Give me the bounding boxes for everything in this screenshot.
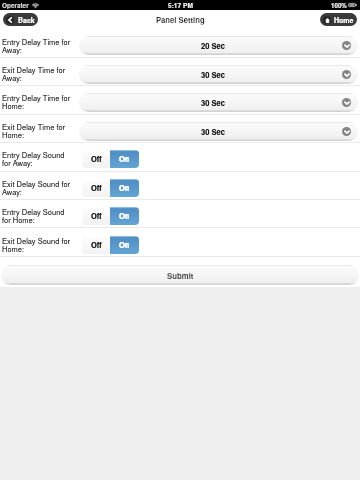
staticText: Entry Delay Time for Home: (2, 92, 75, 111)
staticText: Back (18, 15, 35, 25)
staticText: 30 Sec (201, 69, 226, 80)
staticText: On (119, 154, 130, 165)
staticText: Entry Delay Time for Away: (2, 36, 75, 55)
staticText: Off (91, 154, 102, 165)
staticText: 100% (331, 1, 347, 10)
button[interactable]: 30 Sec (79, 122, 358, 141)
staticText: Exit Delay Time for Away: (2, 64, 75, 83)
staticText: 20 Sec (201, 40, 226, 51)
button[interactable]: Back (3, 13, 38, 26)
staticText: Off (91, 211, 102, 222)
button[interactable]: 30 Sec (79, 93, 358, 112)
button[interactable]: On (110, 236, 139, 254)
staticText: Panel Setting (156, 14, 205, 25)
staticText: Entry Delay Sound for Home: (2, 206, 75, 225)
staticText: 30 Sec (201, 97, 226, 108)
staticText: Off (91, 183, 102, 194)
staticText: On (119, 183, 130, 194)
staticText: Exit Delay Sound for Home: (2, 235, 75, 254)
staticText: On (119, 211, 130, 222)
staticText: 30 Sec (201, 126, 226, 137)
staticText: On (119, 240, 130, 251)
staticText: 30 Sec (201, 97, 226, 108)
button[interactable]: Off (82, 179, 110, 197)
button[interactable]: On (110, 207, 139, 225)
staticText: Off (91, 154, 102, 165)
button[interactable]: 20 Sec (79, 36, 358, 55)
staticText: Exit Delay Sound for Away: (2, 178, 75, 197)
button[interactable]: Off (82, 207, 110, 225)
button[interactable]: Submit (1, 265, 359, 285)
staticText: Exit Delay Sound for Away: (2, 178, 75, 197)
staticText: On (119, 240, 130, 251)
staticText: Submit (167, 270, 194, 281)
button[interactable]: 30 Sec (79, 65, 358, 84)
staticText: Home (334, 15, 354, 25)
staticText: Exit Delay Time for Home: (2, 121, 75, 140)
staticText: On (119, 183, 130, 194)
button[interactable]: On (110, 150, 139, 168)
button[interactable]: Home (320, 13, 357, 26)
button[interactable]: On (110, 179, 139, 197)
staticText: 30 Sec (201, 126, 226, 137)
staticText: On (119, 154, 130, 165)
staticText: Entry Delay Sound for Away: (2, 149, 75, 168)
staticText: Exit Delay Sound for Home: (2, 235, 75, 254)
button[interactable]: Off (82, 236, 110, 254)
staticText: Entry Delay Sound for Away: (2, 149, 75, 168)
staticText: 30 Sec (201, 69, 226, 80)
staticText: Off (91, 240, 102, 251)
staticText: 5:17 PM (168, 1, 193, 10)
staticText: Off (91, 240, 102, 251)
staticText: Off (91, 211, 102, 222)
staticText: Entry Delay Time for Away: (2, 36, 75, 55)
staticText: Entry Delay Sound for Home: (2, 206, 75, 225)
staticText: Exit Delay Time for Away: (2, 64, 75, 83)
staticText: Exit Delay Time for Home: (2, 121, 75, 140)
staticText: Entry Delay Time for Home: (2, 92, 75, 111)
staticText: 20 Sec (201, 40, 226, 51)
staticText: Off (91, 183, 102, 194)
button[interactable]: Off (82, 150, 110, 168)
staticText: Operater (2, 1, 29, 10)
staticText: On (119, 211, 130, 222)
